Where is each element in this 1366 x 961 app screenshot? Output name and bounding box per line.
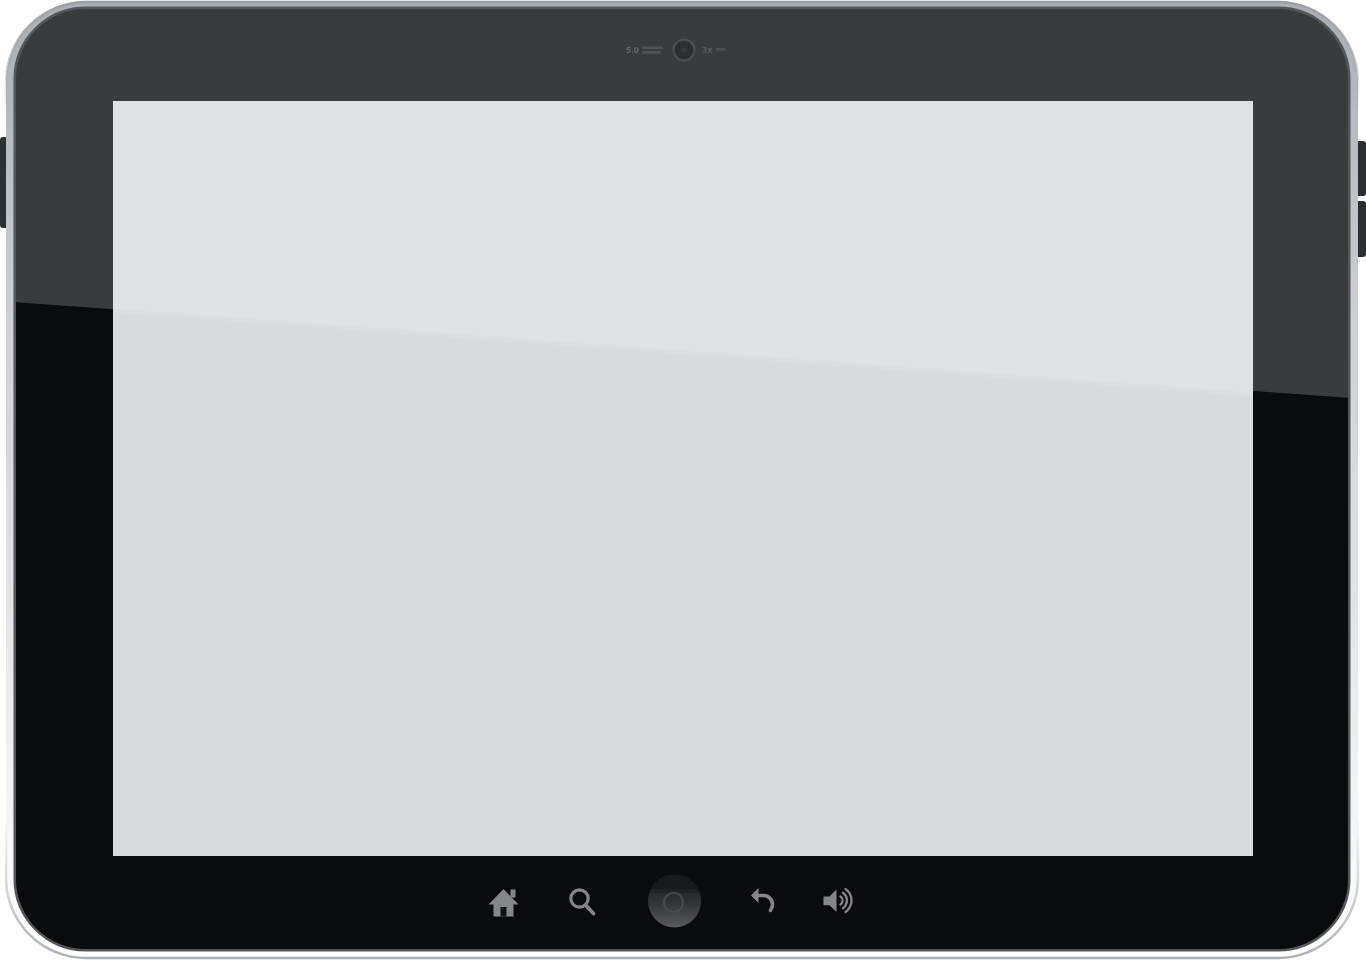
button[interactable]: [1354, 141, 1366, 196]
button[interactable]: [566, 886, 597, 917]
button[interactable]: [1354, 201, 1366, 257]
button[interactable]: [486, 886, 521, 919]
staticText: 3x: [702, 43, 713, 55]
staticText: 5.0: [626, 43, 639, 55]
button[interactable]: [820, 885, 856, 916]
button[interactable]: [648, 874, 701, 928]
button[interactable]: [0, 137, 12, 228]
button[interactable]: [748, 885, 778, 915]
